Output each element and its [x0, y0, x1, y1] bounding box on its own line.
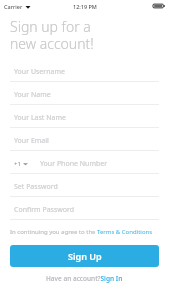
staticText: Your Phone Number — [40, 159, 108, 169]
staticText: +1 — [14, 160, 21, 168]
staticText: Your Email — [14, 136, 49, 146]
button[interactable]: +1 — [10, 155, 159, 174]
button[interactable]: In continuing you agree to the Terms & C… — [10, 228, 159, 236]
staticText: Set Password — [14, 182, 58, 192]
staticText: Your Name — [14, 90, 51, 100]
other: Select country code — [23, 162, 28, 166]
staticText: Carrier — [4, 3, 23, 10]
staticText: Confirm Password — [14, 205, 75, 215]
button[interactable]: Your Username — [10, 63, 159, 82]
staticText: Sign Up — [68, 250, 102, 262]
staticText: 12:19 PM — [73, 3, 97, 10]
staticText: Your Username — [14, 67, 65, 77]
staticText: Sign up for a new account! — [10, 17, 94, 53]
button[interactable]: Your Name — [10, 86, 159, 105]
button[interactable]: Sign Up — [10, 245, 159, 267]
button[interactable]: Your Email — [10, 132, 159, 151]
button[interactable]: Confirm Password — [10, 201, 159, 220]
staticText: Your Last Name — [14, 113, 66, 123]
staticText: Have an account?Sign In — [46, 274, 123, 283]
button[interactable]: Set Password — [10, 178, 159, 197]
button[interactable]: Your Last Name — [10, 109, 159, 128]
button[interactable]: Have an account?Sign In — [10, 274, 159, 283]
